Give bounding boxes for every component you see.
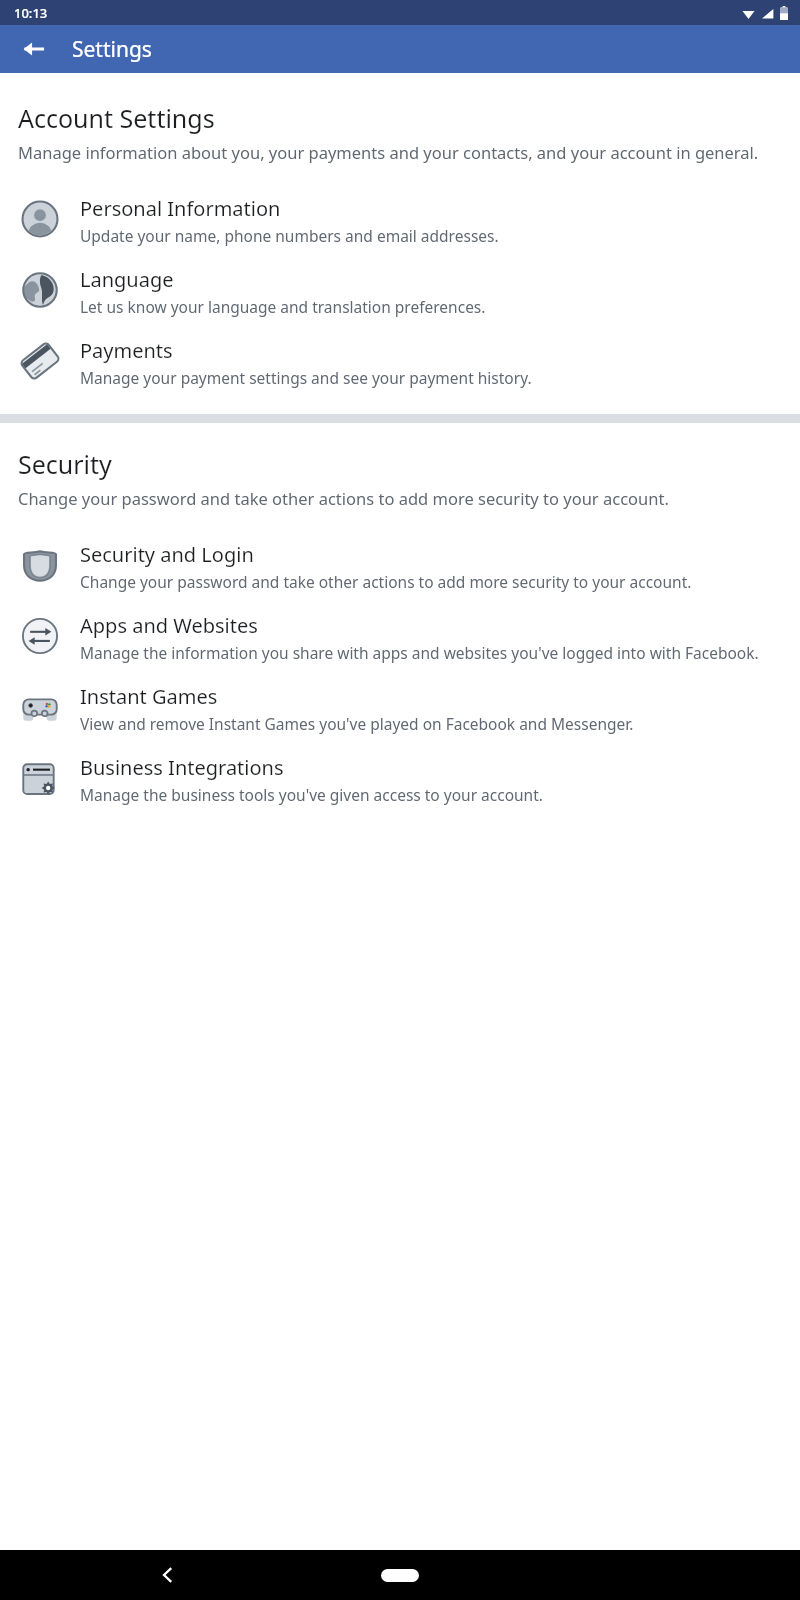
staticText: Update your name, phone numbers and emai… bbox=[80, 225, 499, 246]
staticText: Personal Information bbox=[80, 195, 281, 222]
staticText: Business Integrations bbox=[80, 754, 284, 781]
staticText: Change your password and take other acti… bbox=[80, 571, 692, 592]
staticText: Language bbox=[80, 266, 174, 293]
staticText: Manage information about you, your payme… bbox=[18, 141, 759, 163]
button[interactable]: Business Integrations bbox=[0, 744, 800, 815]
staticText: Security bbox=[18, 447, 112, 481]
button[interactable]: Security and Login bbox=[0, 531, 800, 602]
button[interactable]: Back bbox=[12, 27, 56, 71]
staticText: Instant Games bbox=[80, 683, 218, 710]
button[interactable]: Apps and Websites bbox=[0, 602, 800, 673]
button[interactable]: Instant Games bbox=[0, 673, 800, 744]
button[interactable]: Back bbox=[148, 1555, 188, 1595]
staticText: Manage your payment settings and see you… bbox=[80, 367, 532, 388]
staticText: Payments bbox=[80, 337, 173, 364]
staticText: View and remove Instant Games you've pla… bbox=[80, 713, 634, 734]
staticText: Security and Login bbox=[80, 541, 254, 568]
staticText: Settings bbox=[72, 35, 152, 64]
staticText: Account Settings bbox=[18, 101, 215, 135]
staticText: Apps and Websites bbox=[80, 612, 258, 639]
staticText: Let us know your language and translatio… bbox=[80, 296, 486, 317]
button[interactable]: Personal Information bbox=[0, 185, 800, 256]
staticText: Manage the business tools you've given a… bbox=[80, 784, 543, 805]
button[interactable]: Payments bbox=[0, 327, 800, 398]
staticText: 10:13 bbox=[14, 4, 48, 22]
staticText: Change your password and take other acti… bbox=[18, 487, 669, 509]
button[interactable]: Language bbox=[0, 256, 800, 327]
button[interactable]: Home bbox=[366, 1555, 434, 1595]
staticText: Manage the information you share with ap… bbox=[80, 642, 759, 663]
